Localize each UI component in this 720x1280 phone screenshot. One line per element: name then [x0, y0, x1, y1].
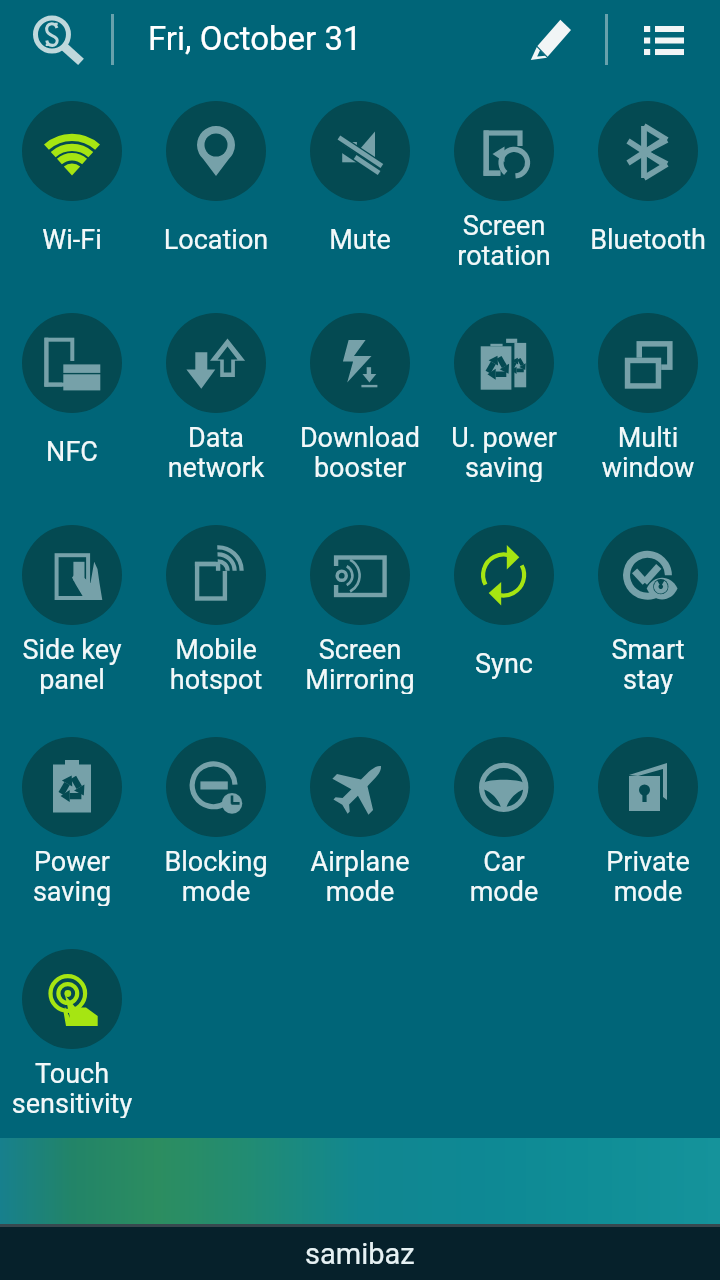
staticText: Multi window: [576, 422, 720, 482]
button[interactable]: S Finder: [10, 0, 100, 78]
button[interactable]: Private mode: [576, 737, 720, 941]
staticText: Screen Mirroring: [288, 634, 432, 694]
button[interactable]: Sync: [432, 525, 576, 729]
button[interactable]: Car mode: [432, 737, 576, 941]
button[interactable]: Multi window: [576, 313, 720, 517]
button[interactable]: NFC: [0, 313, 144, 517]
button[interactable]: Power saving: [0, 737, 144, 941]
staticText: Side key panel: [0, 634, 144, 694]
button[interactable]: Data network: [144, 313, 288, 517]
staticText: Location: [144, 224, 288, 256]
staticText: Power saving: [0, 846, 144, 906]
staticText: Blocking mode: [144, 846, 288, 906]
button[interactable]: Screen rotation: [432, 101, 576, 305]
staticText: Bluetooth: [576, 224, 720, 256]
staticText: Airplane mode: [288, 846, 432, 906]
button[interactable]: Touch sensitivity: [0, 949, 144, 1153]
button[interactable]: Side key panel: [0, 525, 144, 729]
button[interactable]: Wi-Fi: [0, 101, 144, 305]
button[interactable]: Airplane mode: [288, 737, 432, 941]
button[interactable]: Download booster: [288, 313, 432, 517]
staticText: Fri, October 31: [148, 19, 362, 58]
button[interactable]: Mobile hotspot: [144, 525, 288, 729]
button[interactable]: Screen Mirroring: [288, 525, 432, 729]
staticText: Mobile hotspot: [144, 634, 288, 694]
staticText: Wi-Fi: [0, 224, 144, 256]
button[interactable]: Mute: [288, 101, 432, 305]
button[interactable]: Smart stay: [576, 525, 720, 729]
staticText: Smart stay: [576, 634, 720, 694]
staticText: Data network: [144, 422, 288, 482]
staticText: Sync: [432, 648, 576, 680]
staticText: Download booster: [288, 422, 432, 482]
button[interactable]: Edit: [510, 6, 590, 74]
staticText: NFC: [0, 436, 144, 468]
button[interactable]: U. power saving: [432, 313, 576, 517]
button[interactable]: Location: [144, 101, 288, 305]
button[interactable]: Blocking mode: [144, 737, 288, 941]
button[interactable]: Bluetooth: [576, 101, 720, 305]
staticText: Mute: [288, 224, 432, 256]
staticText: Screen rotation: [432, 210, 576, 270]
staticText: samibaz: [305, 1237, 415, 1271]
staticText: Touch sensitivity: [0, 1058, 144, 1118]
staticText: Private mode: [576, 846, 720, 906]
staticText: Car mode: [432, 846, 576, 906]
staticText: U. power saving: [432, 422, 576, 482]
button[interactable]: List view: [620, 6, 698, 74]
